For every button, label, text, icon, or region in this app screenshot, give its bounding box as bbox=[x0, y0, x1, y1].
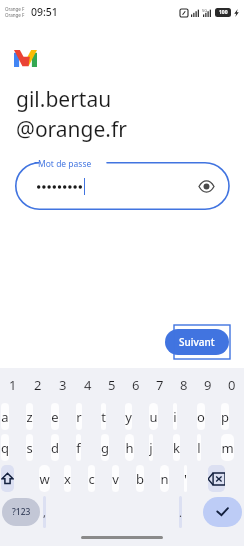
button[interactable]: , bbox=[43, 496, 46, 528]
button[interactable]: 6 bbox=[124, 368, 148, 401]
staticText: ' bbox=[184, 470, 187, 488]
staticText: s bbox=[26, 439, 33, 457]
staticText: p bbox=[221, 408, 229, 426]
staticText: x bbox=[64, 470, 71, 488]
staticText: . bbox=[179, 505, 182, 520]
button[interactable]: o bbox=[197, 403, 205, 430]
staticText: q bbox=[1, 439, 9, 457]
staticText: a bbox=[1, 408, 9, 426]
button[interactable]: 0 bbox=[220, 368, 244, 401]
button[interactable]: j bbox=[149, 434, 153, 461]
button[interactable]: 5 bbox=[100, 368, 124, 401]
button[interactable]: g bbox=[101, 434, 109, 461]
staticText: z bbox=[26, 408, 33, 426]
button[interactable]: m bbox=[221, 434, 234, 461]
staticText: 100 bbox=[219, 9, 228, 16]
button[interactable]: y bbox=[125, 403, 132, 430]
button[interactable]: p bbox=[221, 403, 229, 430]
staticText: g bbox=[101, 439, 109, 457]
staticText: e bbox=[51, 408, 59, 426]
button[interactable]: v bbox=[112, 465, 119, 492]
staticText: gil.bertau @orange.fr bbox=[16, 85, 127, 143]
button[interactable]: 1 bbox=[0, 368, 25, 401]
staticText: 4 bbox=[84, 376, 92, 394]
button[interactable]: 3 bbox=[50, 368, 75, 401]
staticText: Orange F bbox=[5, 6, 25, 12]
staticText: Mot de passe bbox=[38, 158, 92, 170]
staticText: j bbox=[149, 439, 153, 457]
button[interactable]: 9 bbox=[196, 368, 220, 401]
staticText: 09:51 bbox=[31, 5, 58, 19]
staticText: d bbox=[51, 439, 59, 457]
staticText: 8 bbox=[180, 376, 188, 394]
button[interactable]: 2 bbox=[25, 368, 50, 401]
button[interactable]: l bbox=[197, 434, 201, 461]
staticText: m bbox=[221, 439, 234, 457]
staticText: k bbox=[173, 439, 180, 457]
button[interactable]: Entrée bbox=[203, 497, 242, 527]
staticText: o bbox=[197, 408, 205, 426]
button[interactable]: k bbox=[173, 434, 180, 461]
button[interactable]: 8 bbox=[172, 368, 196, 401]
button[interactable]: q bbox=[1, 434, 9, 461]
staticText: w bbox=[39, 470, 50, 488]
button[interactable]: d bbox=[51, 434, 59, 461]
staticText: c bbox=[88, 470, 95, 488]
button[interactable]: b bbox=[136, 465, 144, 492]
button[interactable]: Afficher le mot de passe bbox=[195, 175, 217, 197]
button[interactable]: a bbox=[1, 403, 9, 430]
staticText: Suivant bbox=[179, 335, 215, 349]
staticText: r bbox=[76, 408, 82, 426]
staticText: , bbox=[43, 505, 46, 520]
other: Supprimer bbox=[208, 473, 225, 485]
button[interactable]: 7 bbox=[148, 368, 172, 401]
staticText: Orange F bbox=[5, 12, 25, 18]
staticText: 6 bbox=[132, 376, 140, 394]
button[interactable]: i bbox=[173, 403, 177, 430]
staticText: u bbox=[149, 408, 158, 426]
staticText: 9 bbox=[204, 376, 212, 394]
button[interactable]: ' bbox=[184, 465, 187, 492]
staticText: n bbox=[160, 470, 169, 488]
staticText: h bbox=[125, 439, 134, 457]
staticText: f bbox=[76, 439, 81, 457]
staticText: i bbox=[173, 408, 177, 426]
staticText: t bbox=[101, 408, 106, 426]
staticText: 3 bbox=[59, 376, 67, 394]
staticText: l bbox=[197, 439, 201, 457]
button[interactable]: r bbox=[76, 403, 82, 430]
button[interactable]: u bbox=[149, 403, 158, 430]
button[interactable]: Maj bbox=[1, 465, 14, 492]
button[interactable]: c bbox=[88, 465, 95, 492]
staticText: 0 bbox=[228, 376, 236, 394]
staticText: 5 bbox=[108, 376, 116, 394]
staticText: v bbox=[112, 470, 119, 488]
button[interactable]: ?123 bbox=[2, 498, 40, 526]
staticText: ?123 bbox=[12, 506, 31, 518]
staticText: 2 bbox=[34, 376, 42, 394]
staticText: 5G bbox=[202, 8, 208, 13]
other: Maj bbox=[1, 472, 14, 485]
button[interactable]: 4 bbox=[75, 368, 100, 401]
button[interactable]: h bbox=[125, 434, 134, 461]
button[interactable]: Supprimer bbox=[208, 465, 225, 492]
button[interactable]: s bbox=[26, 434, 33, 461]
button[interactable]: t bbox=[101, 403, 106, 430]
staticText: b bbox=[136, 470, 144, 488]
button[interactable]: z bbox=[26, 403, 33, 430]
staticText: 1 bbox=[9, 376, 17, 394]
button[interactable]: . bbox=[179, 496, 182, 528]
button[interactable]: w bbox=[39, 465, 50, 492]
button[interactable]: e bbox=[51, 403, 59, 430]
button[interactable]: Suivant bbox=[165, 329, 229, 355]
staticText: y bbox=[125, 408, 132, 426]
button[interactable]: x bbox=[64, 465, 71, 492]
button[interactable]: n bbox=[160, 465, 169, 492]
button[interactable]: f bbox=[76, 434, 81, 461]
staticText: 7 bbox=[156, 376, 164, 394]
